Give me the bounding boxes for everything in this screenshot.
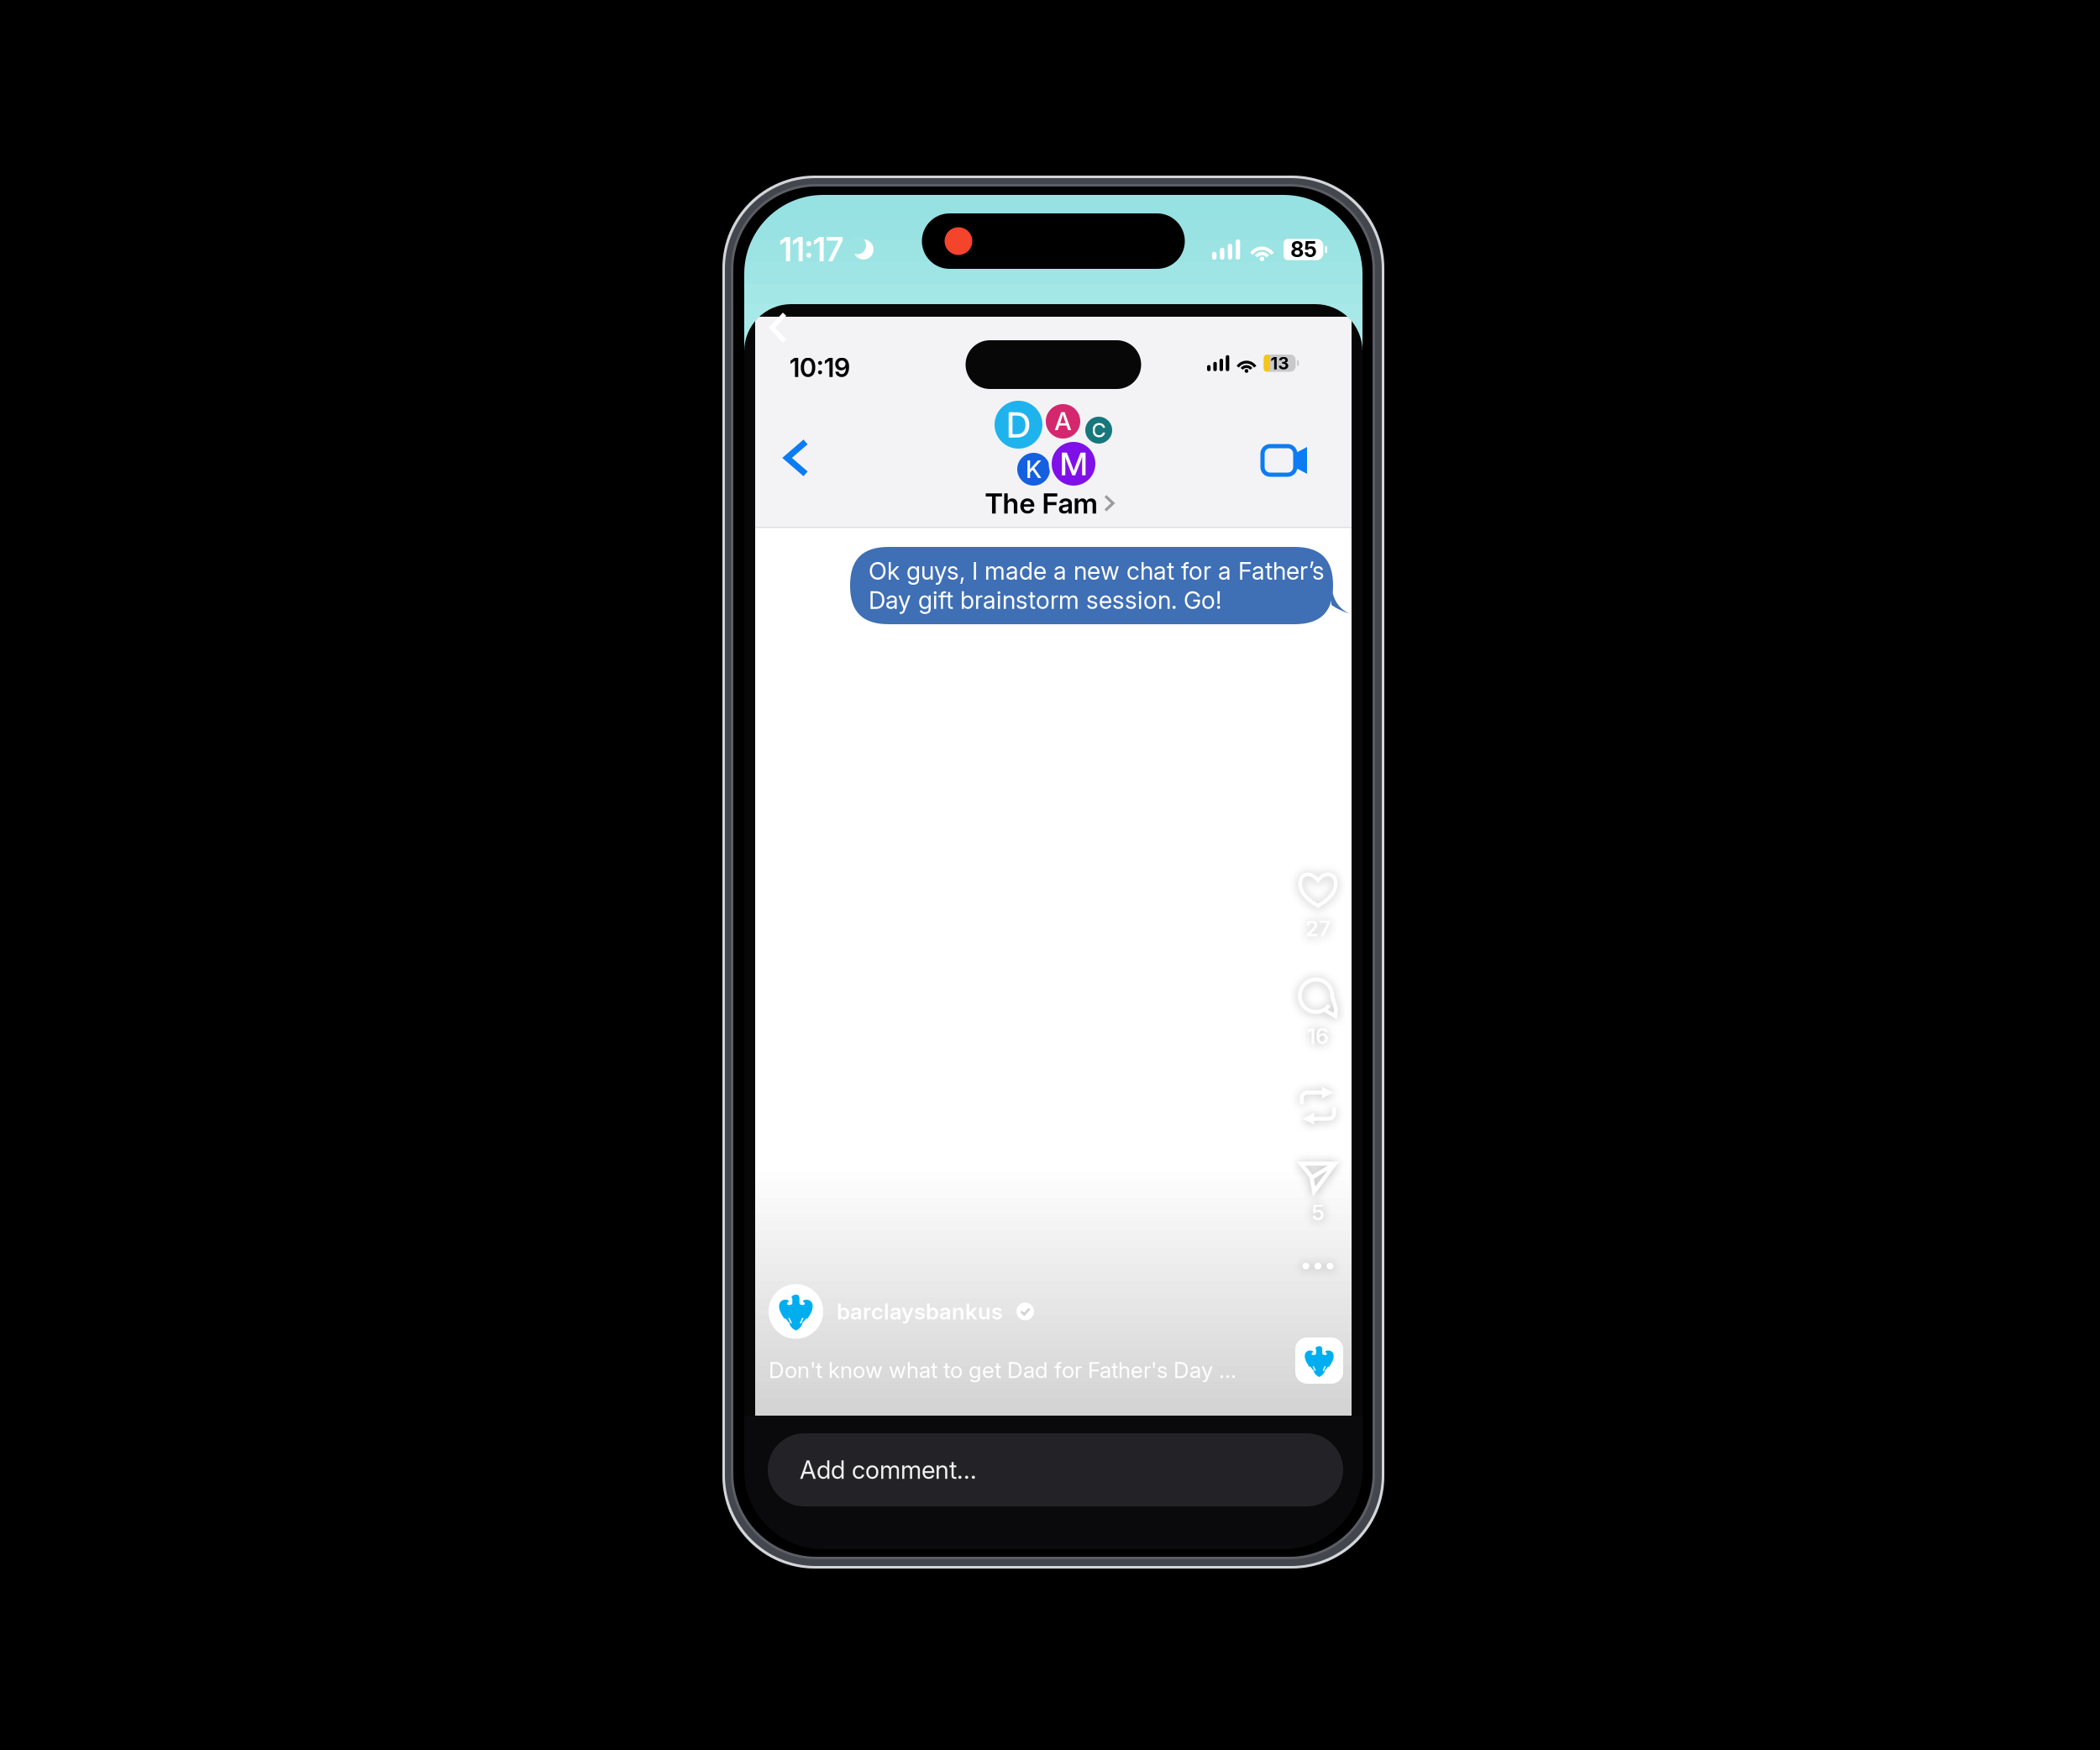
button[interactable]: Repost <box>1286 1086 1350 1125</box>
button[interactable]: Share <box>1286 1154 1350 1226</box>
button[interactable]: Open barclaysbankus profile <box>1295 1337 1343 1384</box>
button[interactable]: Comment <box>1286 978 1350 1049</box>
staticText: M <box>1060 444 1087 483</box>
button[interactable]: Back <box>765 422 827 494</box>
staticText: 5 <box>1312 1200 1324 1226</box>
staticText: Don't know what to get Dad for Father's … <box>769 1357 1236 1383</box>
staticText: C <box>1092 418 1106 442</box>
button[interactable]: More options <box>1286 1256 1350 1276</box>
staticText: 11:17 <box>780 230 843 269</box>
staticText: 27 <box>1305 916 1331 942</box>
staticText: A <box>1054 406 1072 437</box>
staticText: 13 <box>1270 353 1289 373</box>
staticText: barclaysbankus <box>837 1298 1003 1325</box>
staticText: K <box>1026 455 1042 484</box>
button[interactable]: Add comment <box>768 1433 1343 1506</box>
staticText: 16 <box>1307 1023 1329 1049</box>
staticText: 10:19 <box>790 352 850 383</box>
staticText: The Fam <box>985 486 1097 520</box>
button[interactable]: Back <box>769 313 787 343</box>
button[interactable]: The Fam, group details <box>975 387 1135 527</box>
button[interactable]: barclaysbankus, verified <box>769 1284 1034 1339</box>
staticText: 85 <box>1290 237 1317 262</box>
button[interactable]: Like <box>1286 870 1350 942</box>
staticText: Ok guys, I made a new chat for a Father’… <box>869 556 1325 615</box>
button[interactable]: FaceTime <box>1244 428 1326 495</box>
staticText: D <box>1006 403 1031 446</box>
staticText: Add comment... <box>800 1455 977 1485</box>
